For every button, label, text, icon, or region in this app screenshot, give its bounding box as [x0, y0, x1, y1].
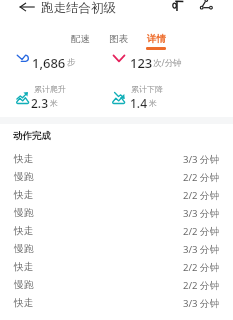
button[interactable]: Music: [171, 0, 184, 11]
staticText: 次/分钟: [153, 57, 182, 69]
staticText: 慢跑: [14, 279, 34, 291]
staticText: 慢跑: [14, 171, 34, 183]
staticText: 图表: [109, 33, 128, 45]
staticText: 分钟: [200, 208, 220, 220]
button[interactable]: 详情: [138, 28, 174, 52]
staticText: 123: [130, 54, 153, 72]
staticText: 2/2: [183, 225, 198, 238]
staticText: 2/2: [183, 279, 198, 292]
button[interactable]: 快走: [0, 186, 233, 204]
button[interactable]: 图表: [100, 28, 136, 52]
staticText: 分钟: [200, 226, 220, 238]
staticText: 分钟: [200, 298, 220, 310]
staticText: 2/2: [183, 189, 198, 202]
button[interactable]: 快走: [0, 258, 233, 276]
staticText: 分钟: [200, 280, 220, 292]
staticText: 慢跑: [14, 207, 34, 219]
staticText: 慢跑: [14, 243, 34, 255]
staticText: 动作完成: [13, 130, 51, 142]
button[interactable]: Back: [18, 0, 36, 16]
button[interactable]: Share: [198, 0, 214, 12]
staticText: 快走: [14, 297, 34, 309]
staticText: 累计下降: [131, 84, 163, 94]
staticText: 详情: [147, 33, 166, 45]
staticText: 2/2: [183, 171, 198, 184]
staticText: 步: [67, 57, 76, 68]
staticText: 跑走结合初级: [41, 0, 116, 16]
button[interactable]: 慢跑: [0, 276, 233, 294]
staticText: 1,686: [32, 54, 66, 72]
staticText: 分钟: [200, 154, 220, 166]
staticText: 2.3: [31, 95, 48, 111]
staticText: 3/3: [183, 153, 198, 166]
staticText: 累计爬升: [34, 84, 66, 94]
staticText: 配速: [71, 33, 90, 45]
staticText: 米: [149, 98, 157, 108]
staticText: 3/3: [183, 207, 198, 220]
staticText: 米: [50, 98, 58, 108]
staticText: 3/3: [183, 297, 198, 310]
staticText: 2/2: [183, 261, 198, 274]
staticText: 快走: [14, 153, 34, 165]
button[interactable]: 配速: [62, 28, 98, 52]
staticText: 1.4: [130, 95, 147, 111]
staticText: 快走: [14, 261, 34, 273]
staticText: 分钟: [200, 244, 220, 256]
staticText: 快走: [14, 189, 34, 201]
staticText: 3/3: [183, 243, 198, 256]
staticText: 分钟: [200, 172, 220, 184]
staticText: 快走: [14, 225, 34, 237]
button[interactable]: 快走: [0, 150, 233, 168]
button[interactable]: 慢跑: [0, 240, 233, 258]
button[interactable]: 快走: [0, 222, 233, 240]
staticText: 分钟: [200, 262, 220, 274]
button[interactable]: 慢跑: [0, 168, 233, 186]
button[interactable]: 慢跑: [0, 204, 233, 222]
button[interactable]: 快走: [0, 294, 233, 312]
staticText: 分钟: [200, 190, 220, 202]
